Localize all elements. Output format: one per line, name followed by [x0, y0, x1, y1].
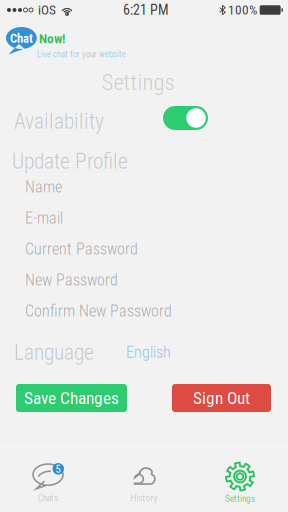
staticText: Sign Out: [193, 388, 250, 408]
staticText: English: [126, 343, 171, 362]
button[interactable]: Current Password: [0, 0, 288, 260]
staticText: Availability: [14, 109, 104, 134]
staticText: 100%: [228, 2, 257, 18]
staticText: Language: [14, 340, 94, 365]
staticText: E-mail: [25, 209, 63, 227]
staticText: History: [130, 492, 157, 503]
button[interactable]: E-mail: [0, 0, 288, 229]
button[interactable]: English: [0, 0, 179, 368]
staticText: Name: [25, 178, 62, 196]
staticText: Settings: [225, 493, 255, 504]
staticText: 6:21 PM: [123, 2, 169, 18]
staticText: New Password: [25, 271, 118, 289]
button[interactable]: Availability toggle: [0, 0, 208, 130]
staticText: Chat: [10, 31, 33, 46]
button[interactable]: New Password: [0, 0, 288, 291]
button[interactable]: Chats: [0, 0, 96, 504]
staticText: Now!: [39, 31, 65, 47]
staticText: Confirm New Password: [25, 302, 172, 320]
staticText: Chats: [38, 492, 58, 503]
staticText: 5: [55, 462, 61, 475]
button[interactable]: Settings: [0, 0, 288, 504]
staticText: Live chat for your website: [37, 49, 126, 59]
button[interactable]: Sign Out: [0, 0, 271, 412]
staticText: Save Changes: [24, 388, 119, 408]
staticText: Settings: [101, 69, 174, 96]
staticText: Update Profile: [12, 149, 128, 174]
button[interactable]: Save Changes: [0, 0, 127, 412]
staticText: Current Password: [25, 240, 138, 258]
button[interactable]: Confirm New Password: [0, 0, 288, 322]
button[interactable]: History: [0, 0, 192, 504]
button[interactable]: Name: [0, 0, 288, 198]
staticText: iOS: [38, 2, 56, 18]
